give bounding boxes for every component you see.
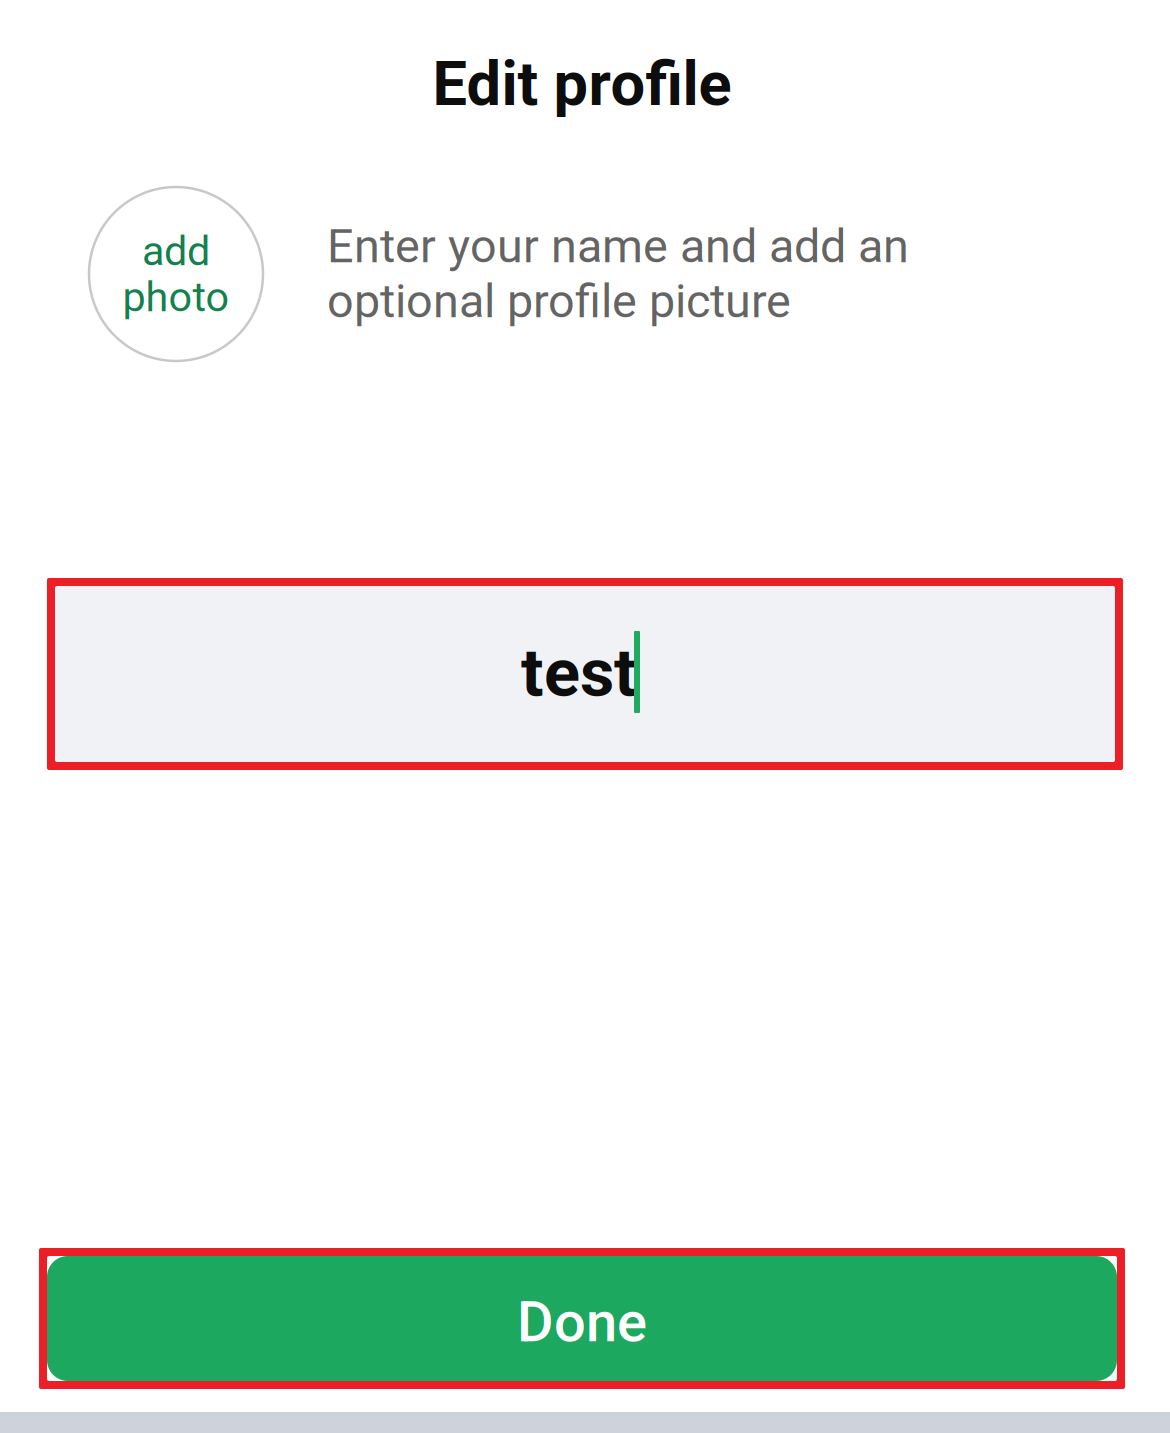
staticText: photo — [122, 273, 229, 321]
staticText: test — [521, 634, 637, 712]
button[interactable]: Add photo — [89, 187, 263, 361]
staticText: Edit profile — [432, 48, 731, 120]
staticText: Done — [517, 1289, 647, 1355]
staticText: optional profile picture — [327, 274, 791, 329]
button[interactable]: Done — [47, 1256, 1117, 1381]
staticText: add — [142, 227, 210, 275]
button[interactable]: Name — [55, 586, 1115, 762]
staticText: Enter your name and add an — [327, 219, 909, 274]
